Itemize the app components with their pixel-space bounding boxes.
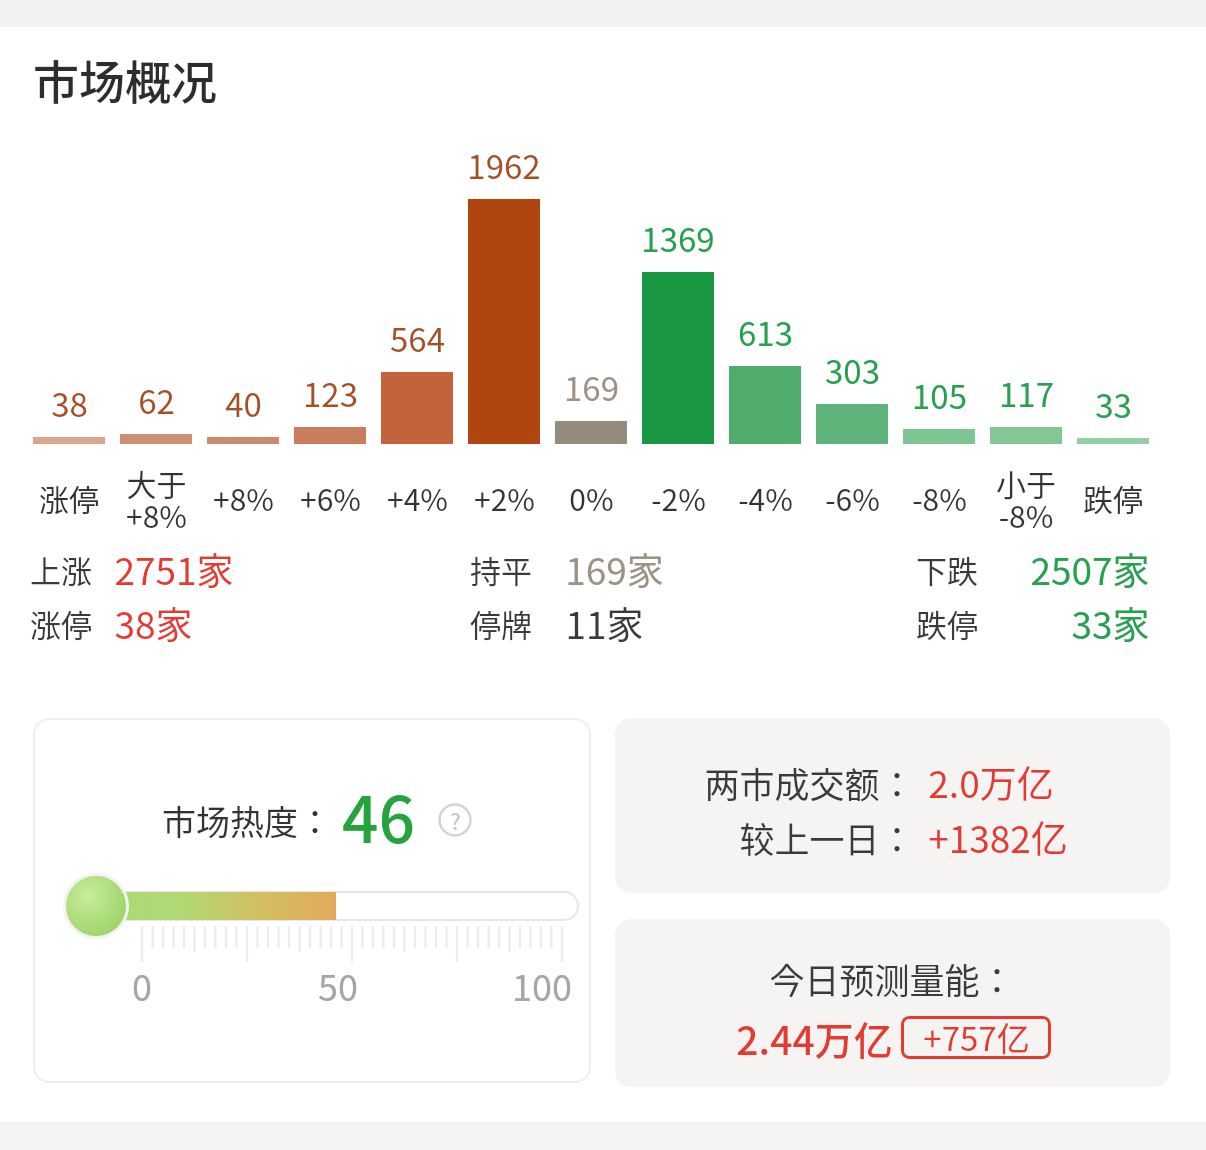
staticText: 较上一日： [739,812,915,863]
staticText: 下跌 [916,547,978,592]
staticText: +1382亿 [928,810,1068,864]
staticText: 涨停 [30,601,92,646]
staticText: 564 [390,314,445,362]
staticText: 38家 [114,596,193,650]
staticText: 持平 [470,547,532,592]
staticText: 11家 [565,596,644,650]
staticText: 169家 [565,542,664,596]
button[interactable] [615,718,1170,893]
button[interactable] [33,718,591,1083]
staticText: +2% [474,476,535,519]
staticText: 0 [132,959,152,1011]
staticText: 105 [912,371,967,419]
staticText: 62 [138,376,175,424]
staticText: 市场热度： [162,796,332,845]
button[interactable] [615,919,1170,1087]
staticText: +6% [300,476,361,519]
staticText: 停牌 [470,601,532,646]
staticText: 50 [318,959,358,1011]
staticText: ? [450,804,461,836]
staticText: 40 [225,379,262,427]
staticText: 0% [569,476,614,519]
staticText: 1369 [641,214,715,262]
staticText: -8% [912,476,967,519]
staticText: 涨停 [39,476,99,519]
staticText: +8% [213,476,274,519]
staticText: 38 [51,379,88,427]
staticText: 46 [342,769,415,862]
staticText: 2507家 [1030,542,1150,596]
staticText: 跌停 [916,601,978,646]
staticText: 市场概况 [33,46,217,113]
button[interactable] [438,803,472,837]
staticText: -6% [825,476,880,519]
staticText: 小于 -8% [996,461,1056,537]
staticText: +757亿 [923,1013,1030,1061]
staticText: 100 [512,959,572,1011]
button[interactable] [901,1016,1051,1059]
staticText: 上涨 [30,547,92,592]
staticText: 117 [999,369,1054,417]
staticText: 今日预测量能： [769,953,1015,1004]
staticText: 123 [303,369,358,417]
staticText: 303 [825,346,880,394]
staticText: 33 [1095,380,1132,428]
staticText: +4% [387,476,448,519]
staticText: 613 [738,308,793,356]
staticText: 跌停 [1083,476,1143,519]
staticText: 大于 +8% [126,461,187,537]
staticText: 2751家 [114,542,234,596]
staticText: 2.44万亿 [736,1010,893,1066]
staticText: 169 [564,363,619,411]
staticText: 1962 [467,141,541,189]
staticText: 33家 [1071,596,1150,650]
staticText: 2.0万亿 [928,755,1054,809]
staticText: -4% [738,476,793,519]
staticText: 两市成交额： [704,757,915,808]
staticText: -2% [651,476,706,519]
